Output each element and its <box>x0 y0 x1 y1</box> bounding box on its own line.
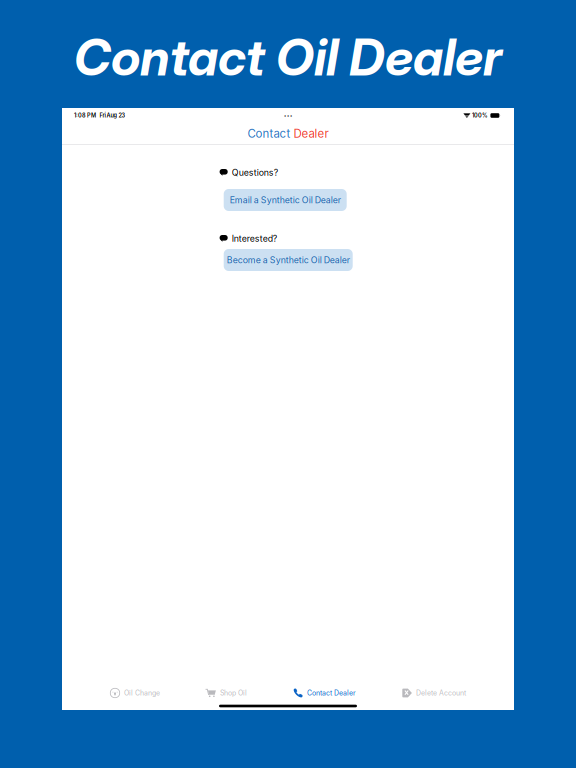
staticText: Dealer <box>293 127 328 141</box>
button[interactable]: Email a Synthetic Oil Dealer <box>224 189 347 211</box>
staticText: Contact Dealer <box>307 689 356 697</box>
staticText: Questions? <box>232 167 278 178</box>
staticText: 1:08 PM <box>74 112 96 119</box>
staticText: 100% <box>472 112 488 119</box>
button[interactable]: Shop Oil <box>206 683 247 703</box>
staticText: Email a Synthetic Oil Dealer <box>230 195 341 205</box>
button[interactable]: Delete Account <box>402 683 466 703</box>
staticText: Contact <box>247 127 293 141</box>
staticText: Contact Oil Dealer <box>74 26 502 88</box>
staticText: Become a Synthetic Oil Dealer <box>227 255 350 265</box>
button[interactable]: Become a Synthetic Oil Dealer <box>224 249 353 271</box>
staticText: Fri Aug 23 <box>99 112 125 119</box>
button[interactable]: Oil Change <box>110 683 160 703</box>
staticText: Shop Oil <box>220 689 247 697</box>
button[interactable]: Contact Dealer <box>293 683 356 703</box>
staticText: Delete Account <box>416 689 466 697</box>
staticText: Oil Change <box>124 689 160 697</box>
staticText: • • • <box>284 113 292 118</box>
staticText: Interested? <box>232 233 277 244</box>
